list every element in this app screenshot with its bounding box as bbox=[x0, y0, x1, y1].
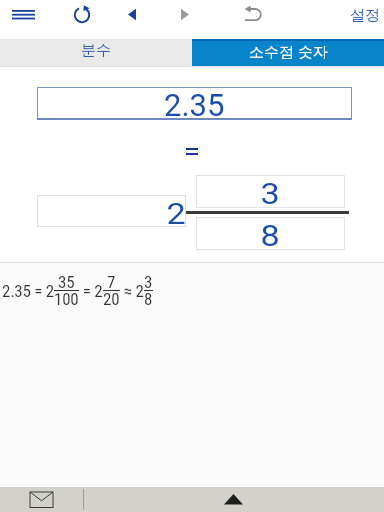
button[interactable]: 3 bbox=[196, 175, 345, 208]
button[interactable]: 8 bbox=[196, 217, 345, 250]
staticText: 35 bbox=[58, 272, 75, 292]
button[interactable] bbox=[6, 2, 42, 28]
staticText: 8 bbox=[144, 289, 153, 309]
staticText: 100 bbox=[54, 289, 79, 309]
staticText: 3 bbox=[144, 272, 153, 292]
staticText: 2.35 bbox=[164, 87, 225, 120]
button[interactable] bbox=[171, 1, 199, 29]
staticText: 설정 bbox=[350, 6, 380, 25]
button[interactable] bbox=[68, 1, 96, 29]
button[interactable] bbox=[26, 487, 58, 512]
button[interactable] bbox=[118, 1, 146, 29]
button[interactable]: 분수 bbox=[0, 39, 192, 66]
button[interactable] bbox=[240, 1, 268, 29]
button[interactable] bbox=[213, 487, 253, 512]
staticText: 20 bbox=[103, 289, 120, 309]
button[interactable]: 2 bbox=[37, 195, 186, 227]
button[interactable]: 설정 bbox=[346, 3, 384, 27]
staticText: 7 bbox=[107, 272, 116, 292]
staticText: 소수점 숫자 bbox=[249, 41, 328, 61]
button[interactable]: 소수점 숫자 bbox=[192, 39, 384, 66]
button[interactable]: 2.35 bbox=[37, 87, 352, 120]
staticText: 8 bbox=[260, 219, 281, 252]
staticText: = 2 bbox=[79, 281, 103, 301]
staticText: 3 bbox=[260, 177, 281, 210]
staticText: 분수 bbox=[81, 41, 111, 60]
staticText: ≈ 2 bbox=[120, 281, 144, 301]
staticText: 2.35 = 2 bbox=[2, 281, 54, 301]
staticText: 2 bbox=[166, 197, 187, 229]
